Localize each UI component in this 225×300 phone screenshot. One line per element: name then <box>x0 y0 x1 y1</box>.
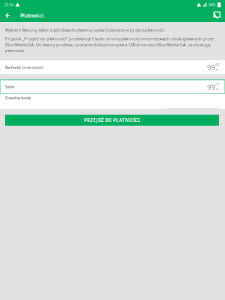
staticText: Płatności <box>20 12 44 19</box>
staticText: Dowolna kwota <box>5 95 31 100</box>
button[interactable]: PRZEJDŹ DO PŁATNOŚCI <box>5 115 219 126</box>
staticText: 00 <box>215 63 219 67</box>
staticText: Saldo <box>5 84 14 89</box>
staticText: zł <box>215 67 218 72</box>
staticText: Przycisk „Przejdź do płatności” przekier… <box>5 36 214 53</box>
button[interactable]: Wiadomości <box>211 9 223 22</box>
staticText: Wybierz fakturę, saldo bądź dowolną kwot… <box>5 27 165 33</box>
button[interactable]: Rachunek za wrzesień <box>0 60 225 74</box>
staticText: 99 <box>207 62 215 72</box>
staticText: zł <box>215 87 218 91</box>
button[interactable]: Wstecz <box>2 9 13 22</box>
button[interactable]: Saldo <box>0 80 225 94</box>
staticText: PRZEJDŹ DO PŁATNOŚCI <box>84 117 140 123</box>
staticText: Rachunek za wrzesień <box>5 64 43 70</box>
staticText: 34% <box>208 2 216 7</box>
staticText: 99 <box>207 82 215 92</box>
staticText: 00 <box>215 82 219 87</box>
button[interactable]: Dowolna kwota <box>0 94 225 109</box>
staticText: 21:14 <box>4 2 13 7</box>
